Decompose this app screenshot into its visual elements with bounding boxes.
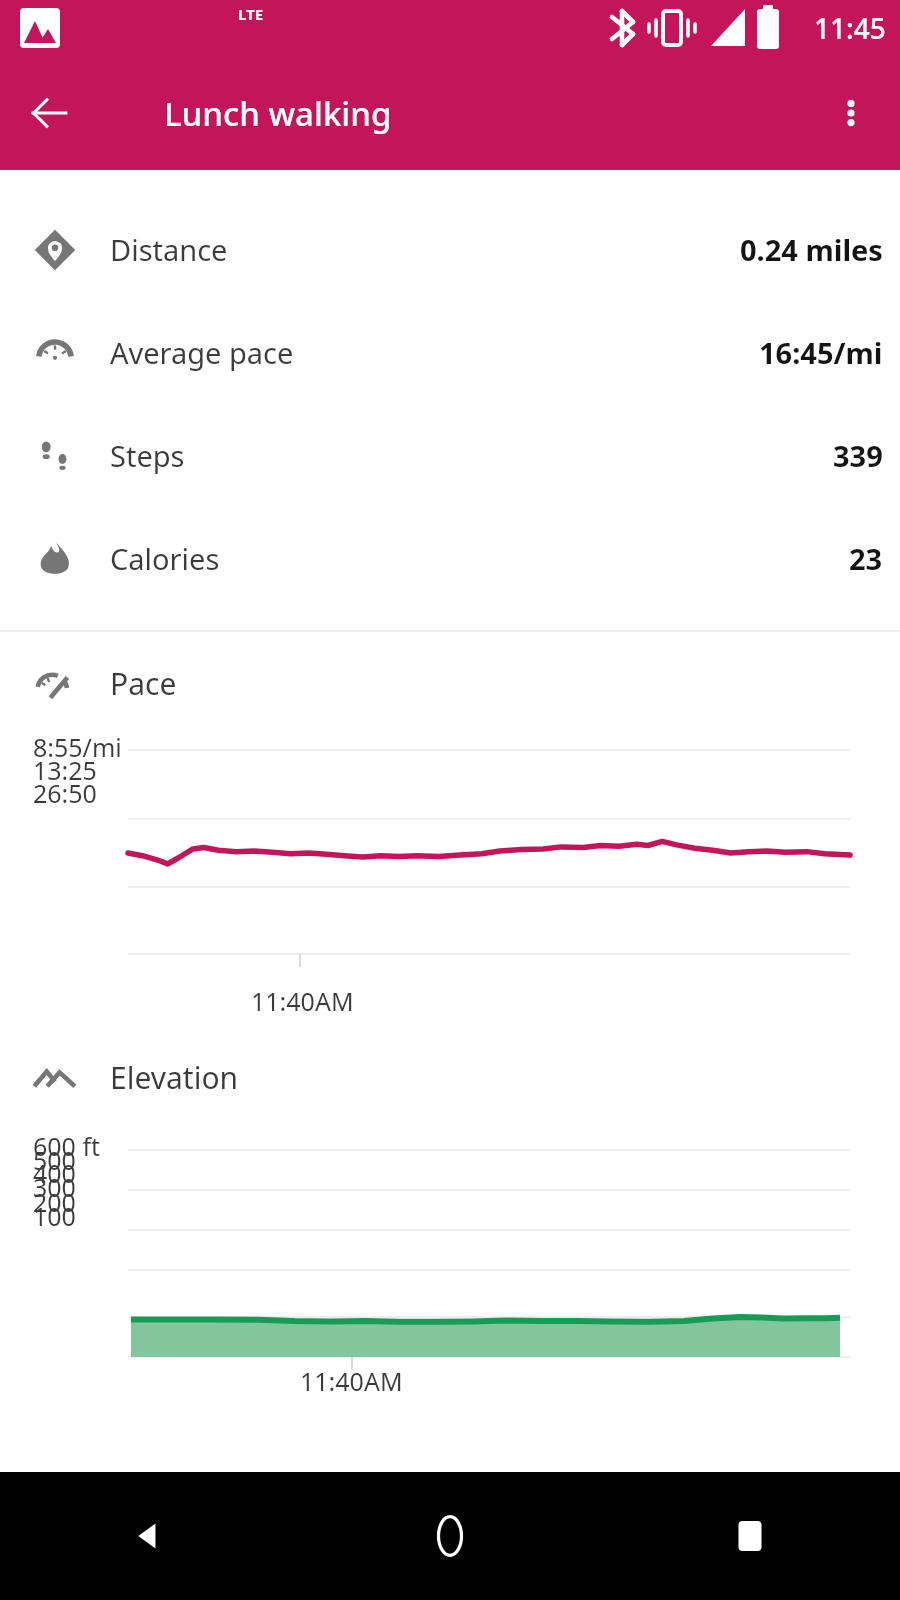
staticText: 200	[33, 1185, 76, 1219]
staticText: 8:55/mi	[33, 730, 122, 764]
staticText: 300	[33, 1170, 76, 1204]
button[interactable]: Home	[300, 1472, 600, 1600]
staticText: 11:40AM	[251, 984, 354, 1018]
staticText: Distance	[110, 230, 228, 269]
staticText: 11:40AM	[300, 1364, 403, 1398]
staticText: Pace	[110, 663, 177, 704]
staticText: Average pace	[110, 333, 294, 372]
button[interactable]: More options	[816, 78, 886, 148]
button[interactable]: Distance	[0, 198, 900, 301]
button[interactable]: Average pace	[0, 301, 900, 404]
staticText: LTE	[238, 4, 264, 24]
staticText: Calories	[110, 539, 220, 578]
staticText: 500	[33, 1143, 76, 1177]
button[interactable]: Calories	[0, 507, 900, 610]
button[interactable]: Back	[14, 78, 84, 148]
staticText: 11:45	[814, 9, 886, 47]
staticText: 400	[33, 1156, 76, 1190]
staticText: 23	[849, 539, 883, 578]
staticText: Lunch walking	[164, 91, 392, 136]
button[interactable]: Recent apps	[600, 1472, 900, 1600]
button[interactable]: Back	[0, 1472, 300, 1600]
staticText: Steps	[110, 436, 185, 475]
staticText: 0.24 miles	[740, 230, 883, 269]
staticText: 16:45/mi	[759, 333, 883, 372]
staticText: 26:50	[33, 776, 97, 810]
button[interactable]: Steps	[0, 404, 900, 507]
staticText: 339	[833, 436, 883, 475]
staticText: Elevation	[110, 1057, 239, 1098]
staticText: 100	[33, 1199, 76, 1233]
staticText: 600 ft	[33, 1129, 101, 1163]
staticText: 13:25	[33, 753, 97, 787]
